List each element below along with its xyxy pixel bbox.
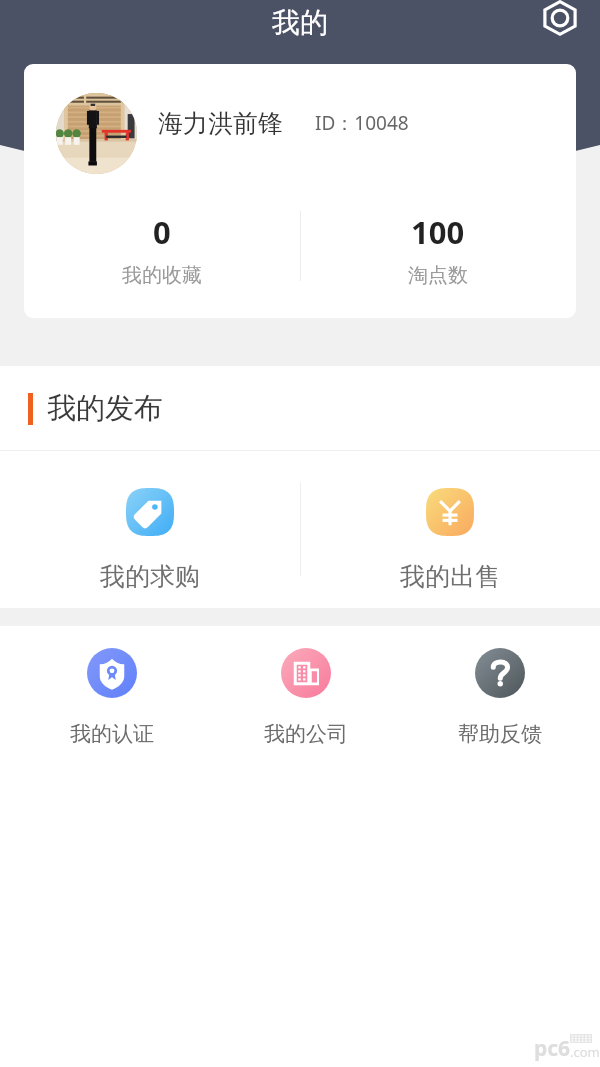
staticText: 我的收藏 (122, 263, 202, 288)
button[interactable]: Settings (538, 0, 582, 44)
staticText: 100 (411, 211, 465, 253)
button[interactable]: 100 (300, 211, 576, 315)
button[interactable]: 0 (24, 211, 300, 315)
button[interactable]: 我的公司 (236, 626, 376, 768)
staticText: 我的求购 (100, 561, 200, 592)
staticText: 海力洪前锋 (158, 108, 283, 139)
button[interactable]: 帮助反馈 (430, 626, 570, 768)
staticText: 0 (153, 211, 171, 253)
staticText: ID：10048 (315, 110, 409, 136)
button[interactable]: 我的认证 (42, 626, 182, 768)
staticText: pc6 (534, 1034, 571, 1062)
staticText: 帮助反馈 (458, 721, 542, 747)
button[interactable]: 海力洪前锋 (24, 64, 576, 318)
staticText: 我的公司 (264, 721, 348, 747)
button[interactable]: 我的出售 (380, 451, 520, 608)
button[interactable]: 我的求购 (80, 451, 220, 608)
staticText: 我的认证 (70, 721, 154, 747)
staticText: 我的 (272, 5, 328, 40)
staticText: 我的发布 (47, 390, 163, 427)
staticText: .com (570, 1043, 600, 1061)
staticText: 淘点数 (408, 263, 468, 288)
staticText: 我的出售 (400, 561, 500, 592)
